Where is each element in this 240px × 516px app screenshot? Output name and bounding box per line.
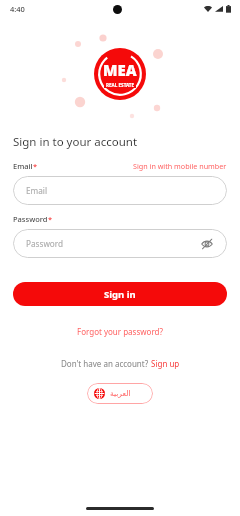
staticText: Email xyxy=(26,185,48,196)
staticText: Sign in with mobile number xyxy=(133,161,227,171)
staticText: Sign in xyxy=(104,288,136,301)
staticText: Email xyxy=(13,161,33,171)
button[interactable]: Show password xyxy=(200,237,214,251)
staticText: * xyxy=(48,214,53,224)
button[interactable]: Forgot your password? xyxy=(13,326,227,337)
staticText: REAL ESTATE xyxy=(106,82,135,88)
button[interactable]: Sign in with mobile number xyxy=(133,161,227,171)
staticText: العربية xyxy=(110,389,131,398)
button[interactable]: Email xyxy=(13,176,227,205)
staticText: Sign in to your account xyxy=(13,134,138,150)
button[interactable]: Password xyxy=(13,229,227,258)
staticText: Forgot your password? xyxy=(77,326,163,337)
staticText: * xyxy=(33,161,38,171)
staticText: Password xyxy=(13,214,48,224)
button[interactable]: العربية xyxy=(87,383,153,404)
staticText: MEA xyxy=(103,60,137,80)
staticText: Sign up xyxy=(151,358,180,369)
button[interactable]: Sign in xyxy=(13,282,227,306)
button[interactable]: Sign up xyxy=(151,358,180,369)
staticText: Password xyxy=(26,238,64,249)
staticText: Don't have an account? xyxy=(61,358,151,369)
staticText: 4:40 xyxy=(10,4,25,14)
